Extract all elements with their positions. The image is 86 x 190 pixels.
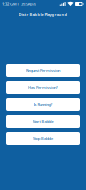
staticText: Start Babble <box>32 119 53 124</box>
staticText: Request Permission <box>26 68 60 73</box>
button[interactable]: Stop Babble <box>6 132 80 145</box>
staticText: Distr Babble Playground <box>18 12 67 17</box>
staticText: 1:32 <box>2 1 9 7</box>
staticText: Has Permission? <box>28 85 58 90</box>
staticText: Is Running? <box>33 102 52 107</box>
button[interactable]: Request Permission <box>6 64 80 77</box>
staticText: GMT 39.5KB/s <box>9 1 36 7</box>
button[interactable]: Start Babble <box>6 115 80 128</box>
button[interactable]: Is Running? <box>6 98 80 111</box>
staticText: Stop Babble <box>33 136 53 141</box>
button[interactable]: Has Permission? <box>6 81 80 94</box>
